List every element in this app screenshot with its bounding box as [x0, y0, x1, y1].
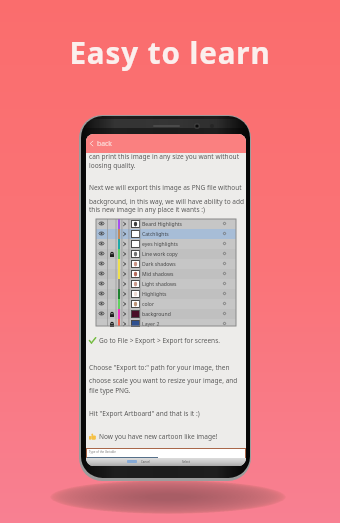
button[interactable]: Light shadows: [96, 279, 236, 289]
staticText: Easy to learn: [0, 32, 340, 72]
staticText: Go to File > Export > Export for screens…: [99, 336, 221, 345]
staticText: background, in this way, we will have ab…: [89, 197, 245, 206]
staticText: Cancel: [141, 460, 150, 464]
button[interactable]: Line work copy: [96, 249, 236, 259]
staticText: Dark shadows: [142, 261, 176, 268]
staticText: can print this image in any size you wan…: [89, 152, 240, 161]
button[interactable]: Select: [182, 460, 191, 464]
staticText: color: [142, 301, 155, 308]
staticText: Highlights: [142, 291, 167, 298]
staticText: Light shadows: [142, 281, 177, 288]
staticText: Catchlights: [142, 231, 169, 238]
button[interactable]: Mid shadows: [96, 269, 236, 279]
button[interactable]: [127, 460, 137, 463]
button[interactable]: eyes highlights: [96, 239, 236, 249]
staticText: back: [97, 139, 112, 148]
button[interactable]: Type of the Variable: [87, 449, 245, 458]
button[interactable]: Back: [86, 134, 246, 153]
staticText: Hit "Export Artboard" and that is it :): [89, 409, 200, 418]
button[interactable]: Catchlights: [96, 229, 236, 239]
staticText: this new image in any place it wants :): [89, 205, 205, 214]
staticText: background: [142, 311, 171, 318]
button[interactable]: Highlights: [96, 289, 236, 299]
staticText: file type PNG.: [89, 386, 131, 395]
button[interactable]: Beard Highlights: [96, 219, 236, 229]
button[interactable]: Dark shadows: [96, 259, 236, 269]
staticText: Mid shadows: [142, 271, 174, 278]
staticText: eyes highlights: [142, 241, 178, 248]
staticText: Now you have new cartoon like image!: [99, 432, 218, 441]
staticText: Beard Highlights: [142, 221, 183, 228]
staticText: Next we will export this image as PNG fi…: [89, 183, 242, 192]
button[interactable]: Layer 2: [96, 319, 236, 326]
staticText: choose scale you want to resize your ima…: [89, 376, 238, 385]
staticText: loosing quality.: [89, 161, 136, 170]
button[interactable]: color: [96, 299, 236, 309]
staticText: Type of the Variable: [89, 450, 116, 454]
button[interactable]: background: [96, 309, 236, 319]
staticText: Choose "Export to:" path for your image,…: [89, 363, 230, 372]
staticText: Line work copy: [142, 251, 178, 258]
staticText: Layer 2: [142, 321, 160, 328]
